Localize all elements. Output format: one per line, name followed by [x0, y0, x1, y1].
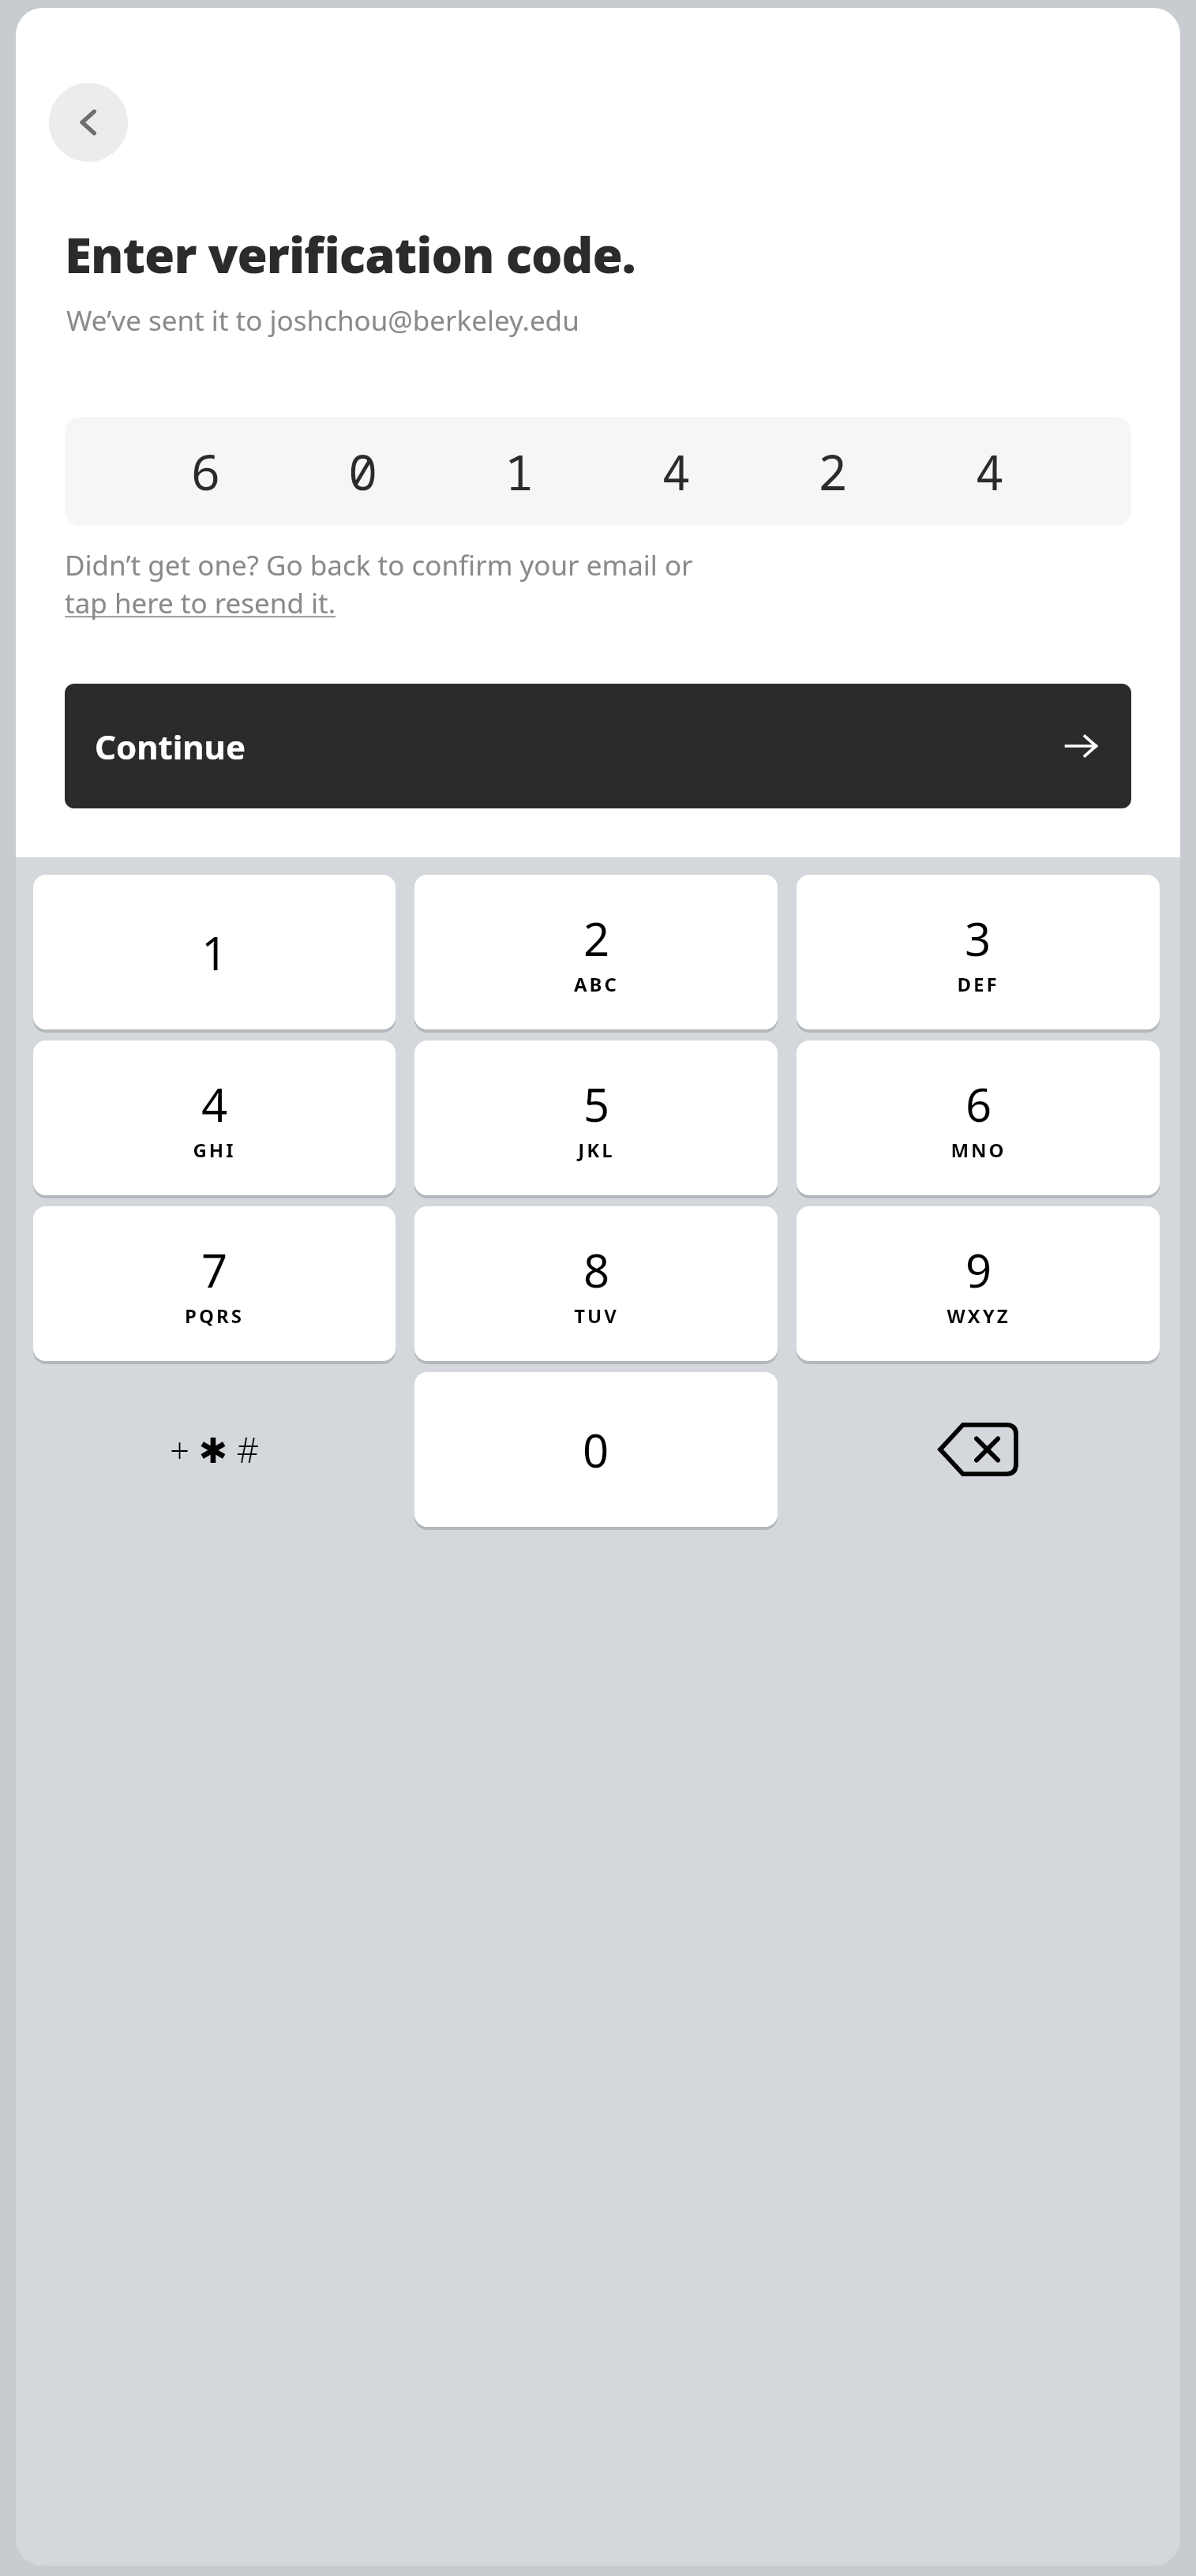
staticText: Continue — [95, 724, 246, 769]
staticText: + ✱ # — [170, 1426, 260, 1473]
button[interactable]: 8 — [414, 1206, 778, 1361]
button[interactable]: Symbols — [33, 1372, 396, 1527]
button[interactable]: 5 — [414, 1041, 778, 1195]
staticText: DEF — [957, 971, 999, 997]
button[interactable]: 1 — [33, 875, 396, 1029]
staticText: tap here to resend it. — [65, 584, 336, 622]
staticText: We’ve sent it to joshchou@berkeley.edu — [66, 302, 579, 339]
staticText: 7 — [201, 1239, 228, 1301]
button[interactable]: 4 — [33, 1041, 396, 1195]
button[interactable]: 6 — [65, 417, 1131, 526]
staticText: 1 — [201, 921, 228, 984]
staticText: 0 — [348, 438, 378, 504]
staticText: 4 — [662, 438, 692, 504]
staticText: Didn’t get one? Go back to confirm your … — [65, 546, 693, 584]
button[interactable]: 3 — [797, 875, 1160, 1029]
staticText: 3 — [965, 907, 992, 969]
button[interactable]: Continue — [65, 684, 1131, 808]
staticText: WXYZ — [947, 1303, 1010, 1329]
staticText: 5 — [583, 1073, 610, 1135]
staticText: PQRS — [185, 1303, 244, 1329]
button[interactable]: Didn’t get one? Go back to confirm your … — [65, 546, 693, 622]
staticText: Enter verification code. — [65, 221, 635, 287]
button[interactable]: Backspace — [797, 1372, 1160, 1527]
staticText: 4 — [975, 438, 1005, 504]
staticText: MNO — [950, 1137, 1007, 1163]
staticText: 6 — [965, 1073, 992, 1135]
staticText: 0 — [583, 1419, 609, 1481]
staticText: ABC — [574, 971, 619, 997]
staticText: 2 — [583, 907, 610, 969]
staticText: 4 — [201, 1073, 228, 1135]
button[interactable]: 0 — [414, 1372, 778, 1527]
staticText: TUV — [574, 1303, 619, 1329]
button[interactable]: 9 — [797, 1206, 1160, 1361]
staticText: GHI — [193, 1137, 236, 1163]
staticText: 8 — [583, 1239, 610, 1301]
staticText: 1 — [504, 438, 534, 504]
button[interactable]: Back — [49, 83, 128, 162]
staticText: 9 — [965, 1239, 992, 1301]
staticText: 2 — [818, 438, 848, 504]
staticText: JKL — [578, 1137, 615, 1163]
button[interactable]: 2 — [414, 875, 778, 1029]
button[interactable]: 6 — [797, 1041, 1160, 1195]
staticText: 6 — [191, 438, 221, 504]
button[interactable]: 7 — [33, 1206, 396, 1361]
